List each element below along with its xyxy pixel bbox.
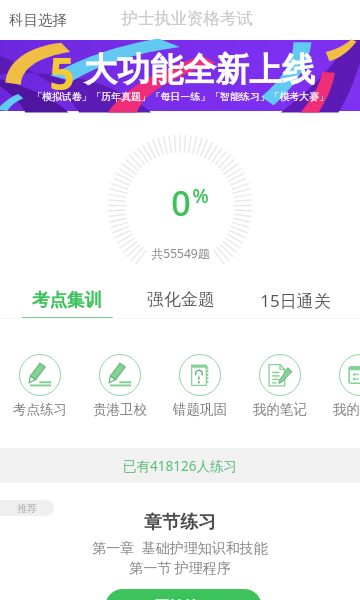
staticText: 科目选择 [9, 11, 67, 29]
staticText: 开始练习 [154, 598, 214, 600]
staticText: % [192, 183, 209, 209]
staticText: 共55549题 [151, 245, 210, 261]
button[interactable]: 15日通关 [248, 276, 342, 320]
staticText: 大功能全新上线 [84, 49, 315, 91]
staticText: 考点练习 [13, 401, 67, 418]
staticText: 错题巩固 [173, 401, 227, 418]
staticText: 15日通关 [260, 289, 331, 312]
button[interactable]: 我的笔记 [241, 330, 319, 418]
staticText: 护士执业资格考试 [121, 8, 253, 29]
staticText: 我的收藏 [333, 401, 360, 418]
button[interactable]: 强化金题 [134, 276, 228, 320]
staticText: 贵港卫校 [93, 401, 147, 418]
staticText: 已有418126人练习 [123, 457, 237, 475]
staticText: 强化金题 [147, 289, 215, 310]
staticText: 我的笔记 [253, 401, 307, 418]
staticText: 5 [49, 43, 75, 103]
staticText: 考点集训 [32, 289, 102, 311]
button[interactable]: 5 [0, 40, 360, 111]
staticText: 第一节 护理程序 [129, 558, 231, 577]
button[interactable]: 考点集训 [20, 276, 114, 320]
staticText: 章节练习 [144, 511, 216, 534]
staticText: 0 [171, 180, 191, 226]
button[interactable]: 我的收藏 [321, 330, 360, 418]
staticText: 第一章 基础护理知识和技能 [92, 538, 268, 557]
button[interactable]: 科目选择 [9, 0, 67, 40]
button[interactable]: 贵港卫校 [81, 330, 159, 418]
button[interactable]: 考点练习 [1, 330, 79, 418]
button[interactable]: 开始练习 [105, 589, 262, 600]
staticText: 推荐 [17, 502, 37, 515]
button[interactable]: 错题巩固 [161, 330, 239, 418]
staticText: 「模拟试卷」「历年真题」「每日一练」「智能练习」「模考大赛」 [32, 90, 329, 102]
